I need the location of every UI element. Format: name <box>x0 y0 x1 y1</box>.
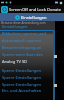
staticText: Sperre Einstellungen <box>2 75 41 80</box>
button[interactable]: Analog TV SD <box>0 59 55 64</box>
button[interactable]: Bildschirm sperren und <box>0 31 55 36</box>
button[interactable]: Automatisch sperren <box>0 38 55 43</box>
staticText: Ein- und Ausschalten <box>2 88 42 93</box>
staticText: Einstellungen <box>2 24 28 29</box>
staticText: Analog TV SD <box>2 59 28 64</box>
button[interactable]: Einstellungen <box>0 24 55 29</box>
staticText: Bildschirm sperren und <box>2 31 46 36</box>
staticText: Sperre beim Start des <box>2 52 43 57</box>
button[interactable]: Benachrichtigung an <box>0 45 55 50</box>
staticText: Sperre Einstellungen <box>2 68 41 73</box>
button[interactable]: Sperre Einstellungen <box>0 75 55 80</box>
staticText: ScreenOff and Lock Donate Ko <box>9 7 64 12</box>
other: App icon <box>1 6 8 13</box>
staticText: Automatisch sperren <box>2 38 42 43</box>
button[interactable]: Sperre beim Start des <box>0 52 55 57</box>
staticText: Sperre Einstellungen <box>2 82 41 87</box>
other: Settings <box>15 15 20 20</box>
button[interactable]: Settings <box>0 13 64 21</box>
button[interactable]: App icon <box>0 5 64 13</box>
button[interactable]: Sperre Einstellungen <box>0 82 55 87</box>
staticText: Benutze diese Anwendung zum <box>1 21 46 25</box>
button[interactable]: Ein- und Ausschalten <box>0 88 55 93</box>
button[interactable]: Sperre Einstellungen <box>0 68 55 73</box>
staticText: Einstellungen <box>21 15 47 20</box>
staticText: Benachrichtigung an <box>2 45 42 50</box>
